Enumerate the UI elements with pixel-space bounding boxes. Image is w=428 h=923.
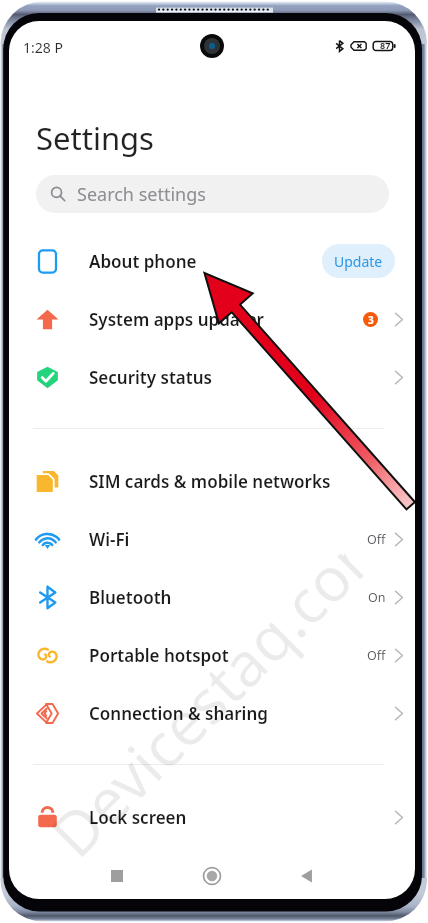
staticText: Wi-Fi [89,528,130,551]
button[interactable]: Home [199,863,225,889]
staticText: System apps updater [89,308,264,331]
button[interactable]: Lock screen [9,788,415,846]
button[interactable]: Wi-Fi [9,510,415,568]
button[interactable]: Recent apps [104,863,130,889]
button[interactable]: Security status [9,348,415,406]
staticText: Devicestaq.com [32,529,378,874]
button[interactable]: About phone [9,232,415,290]
staticText: SIM cards & mobile networks [89,470,331,493]
button[interactable]: Update [322,244,395,278]
staticText: Off [367,647,386,664]
staticText: Security status [89,366,212,389]
staticText: Connection & sharing [89,702,268,725]
button[interactable]: Back [293,863,319,889]
staticText: Portable hotspot [89,644,229,667]
staticText: Search settings [77,182,206,207]
button[interactable]: Bluetooth [9,568,415,626]
staticText: Bluetooth [89,586,172,609]
staticText: 3 [368,313,374,327]
staticText: Update [334,252,383,271]
staticText: On [368,589,386,606]
staticText: Off [367,531,386,548]
button[interactable]: Connection & sharing [9,684,415,742]
staticText: 1:28 P [23,38,63,57]
button[interactable]: SIM cards & mobile networks [9,452,415,510]
button[interactable]: Portable hotspot [9,626,415,684]
staticText: About phone [89,250,197,273]
staticText: 87 [380,39,391,51]
staticText: Lock screen [89,806,187,829]
staticText: Settings [36,117,154,159]
button[interactable]: System apps updater [9,290,415,348]
button[interactable]: Search settings [36,175,389,213]
